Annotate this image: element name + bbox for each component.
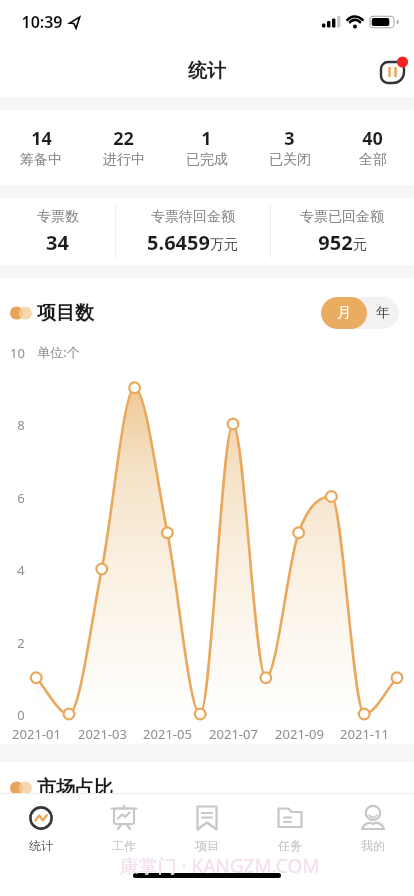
button[interactable]: 项目: [165, 804, 248, 853]
staticText: 筹备中: [20, 151, 62, 169]
staticText: 元: [353, 236, 367, 254]
button[interactable]: 专票待回金额: [115, 208, 270, 265]
staticText: 任务: [278, 838, 302, 853]
staticText: 统计: [29, 838, 53, 853]
staticText: 已关闭: [269, 151, 311, 169]
staticText: 进行中: [103, 151, 145, 169]
staticText: 2: [17, 634, 25, 652]
staticText: 5.6459: [147, 229, 210, 256]
staticText: 2021-09: [275, 725, 324, 743]
staticText: 项目数: [37, 301, 94, 325]
button[interactable]: 统计: [0, 804, 82, 853]
staticText: 专票待回金额: [151, 208, 235, 226]
button[interactable]: 我的: [331, 804, 414, 853]
staticText: 2021-11: [340, 725, 389, 743]
staticText: 专票数: [37, 208, 79, 226]
button[interactable]: 40: [331, 126, 414, 185]
staticText: 1: [201, 126, 212, 151]
staticText: 2021-01: [12, 725, 61, 743]
staticText: 项目: [195, 838, 219, 853]
button[interactable]: 工作: [82, 804, 165, 853]
staticText: 0: [17, 706, 25, 724]
staticText: 我的: [361, 838, 385, 853]
staticText: 10:39: [21, 11, 63, 33]
staticText: 40: [362, 126, 383, 151]
staticText: 年: [376, 304, 390, 322]
staticText: 2021-05: [143, 725, 192, 743]
staticText: 工作: [112, 838, 136, 853]
staticText: 单位:个: [37, 343, 80, 361]
button[interactable]: 1: [165, 126, 248, 185]
staticText: 34: [46, 229, 69, 256]
staticText: 康掌门 · KANGZM.COM: [119, 853, 320, 879]
button[interactable]: 14: [0, 126, 82, 185]
staticText: 10: [10, 344, 25, 362]
button[interactable]: 月: [321, 297, 367, 329]
staticText: 已完成: [186, 151, 228, 169]
button[interactable]: 3: [248, 126, 331, 185]
staticText: 8: [17, 416, 25, 434]
staticText: 2021-03: [78, 725, 127, 743]
button[interactable]: 年: [367, 297, 399, 329]
staticText: 月: [337, 304, 351, 322]
button[interactable]: [379, 55, 411, 87]
staticText: 6: [17, 489, 25, 507]
staticText: 市场占比: [37, 776, 113, 800]
button[interactable]: 任务: [248, 804, 331, 853]
staticText: 22: [113, 126, 134, 151]
button[interactable]: 22: [82, 126, 165, 185]
button[interactable]: 专票数: [0, 208, 115, 265]
staticText: 14: [31, 126, 52, 151]
button[interactable]: 专票已回金额: [270, 208, 414, 265]
staticText: 专票已回金额: [300, 208, 384, 226]
staticText: 全部: [359, 151, 387, 169]
staticText: 统计: [188, 59, 226, 83]
staticText: 3: [284, 126, 295, 151]
staticText: 万元: [210, 236, 238, 254]
staticText: 952: [318, 229, 353, 256]
staticText: 4: [17, 561, 25, 579]
staticText: 2021-07: [209, 725, 258, 743]
